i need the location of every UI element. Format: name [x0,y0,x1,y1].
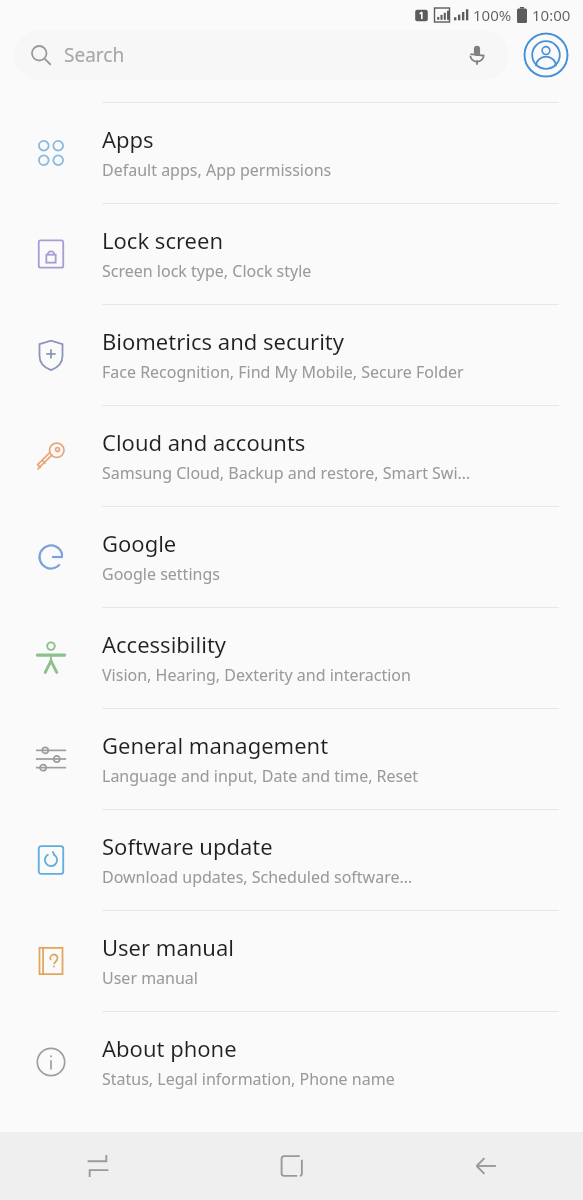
button[interactable]: Recents [0,1132,195,1200]
staticText: Search [64,42,125,68]
staticText: User manual [102,967,198,989]
button[interactable]: Google [0,506,583,607]
button[interactable]: Biometrics and security [0,304,583,405]
staticText: Screen lock type, Clock style [102,260,312,282]
button[interactable]: Lock screen [0,203,583,304]
staticText: Vision, Hearing, Dexterity and interacti… [102,664,411,686]
button[interactable]: Home [195,1132,389,1200]
staticText: Apps [102,124,154,154]
staticText: 10:00 [532,5,571,25]
staticText: Language and input, Date and time, Reset [102,765,419,787]
staticText: About phone [102,1033,237,1063]
button[interactable]: Cloud and accounts [0,405,583,506]
button[interactable]: Search [14,30,509,80]
staticText: Software update [102,831,273,861]
staticText: Status, Legal information, Phone name [102,1068,395,1090]
staticText: Face Recognition, Find My Mobile, Secure… [102,361,464,383]
button[interactable]: Accessibility [0,607,583,708]
button[interactable]: Account [523,32,569,78]
button[interactable]: User manual [0,910,583,1011]
staticText: Accessibility [102,629,227,659]
staticText: Lock screen [102,225,224,255]
staticText: General management [102,730,329,760]
staticText: Cloud and accounts [102,427,306,457]
staticText: Google settings [102,563,220,585]
button[interactable]: About phone [0,1011,583,1112]
staticText: Samsung Cloud, Backup and restore, Smart… [102,462,471,484]
button[interactable]: Apps [0,102,583,203]
staticText: User manual [102,932,234,962]
button[interactable]: Software update [0,809,583,910]
staticText: Google [102,528,177,558]
staticText: Download updates, Scheduled software… [102,866,413,888]
button[interactable]: Voice search [461,39,493,71]
staticText: Biometrics and security [102,326,345,356]
button[interactable]: General management [0,708,583,809]
staticText: 100% [473,5,512,25]
button[interactable]: Back [389,1132,583,1200]
staticText: Default apps, App permissions [102,159,332,181]
